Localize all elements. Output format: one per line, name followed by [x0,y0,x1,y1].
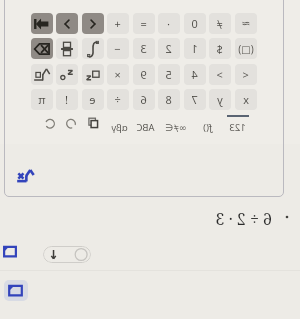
staticText: 2 [165,41,172,56]
button[interactable]: Fraction [56,38,78,59]
button[interactable]: Backspace [31,13,53,34]
button[interactable]: Copy [83,112,103,134]
button[interactable]: $ [209,38,231,59]
button[interactable]: > [209,64,231,85]
button[interactable]: = [133,13,155,34]
button[interactable]: ∞≠∈ [162,112,190,134]
staticText: 123 [229,121,246,134]
button[interactable]: ≠ [209,13,231,34]
staticText: 1 [191,41,198,56]
staticText: 0 [191,16,198,31]
staticText: e [89,92,96,107]
staticText: π [38,92,46,107]
button[interactable]: · [158,13,180,34]
button[interactable]: 8 [158,89,180,110]
button[interactable]: 5 [158,64,180,85]
button[interactable]: (□) [235,38,257,59]
button[interactable]: 9 [133,64,155,85]
staticText: 4 [191,67,198,82]
staticText: · [167,16,170,31]
button[interactable]: Notes [4,280,28,301]
button[interactable]: ! [56,89,78,110]
button[interactable]: × [107,64,129,85]
button[interactable]: 4 [184,64,206,85]
button[interactable]: 3 [133,38,155,59]
staticText: < [242,67,249,82]
button[interactable]: Delete [31,38,53,59]
button[interactable]: Subscript [82,64,104,85]
staticText: > [216,67,223,82]
staticText: 6 ÷ 2 · 3 [215,208,272,230]
staticText: ≠ [216,16,223,31]
staticText: = [140,16,147,31]
staticText: 9 [140,67,147,82]
staticText: x [243,92,249,107]
staticText: 7 [191,92,198,107]
button[interactable]: Left [56,13,78,34]
staticText: $ [216,41,223,56]
button[interactable]: Redo [61,112,81,134]
button[interactable]: + [107,13,129,34]
button[interactable]: e [82,89,104,110]
button[interactable]: 123 [224,112,252,134]
button[interactable]: Note [3,245,17,258]
staticText: + [114,16,121,31]
button[interactable]: Expand [43,246,91,263]
button[interactable]: ≈ [235,13,257,34]
button[interactable]: − [107,38,129,59]
button[interactable]: 6 [133,89,155,110]
button[interactable]: π [31,89,53,110]
button[interactable]: Exponent [31,64,53,85]
button[interactable]: Right [82,13,104,34]
button[interactable]: < [235,64,257,85]
button[interactable]: 7 [184,89,206,110]
button[interactable]: αβγ [106,112,134,134]
button[interactable]: ƒ() [194,112,222,134]
staticText: ƒ() [203,121,213,134]
button[interactable]: Integral [82,38,104,59]
button[interactable]: 1 [184,38,206,59]
staticText: 8 [165,92,172,107]
button[interactable]: x [235,89,257,110]
button[interactable]: 2 [158,38,180,59]
staticText: (□) [238,42,254,56]
button[interactable]: ABC [132,112,160,134]
staticText: 3 [140,41,147,56]
staticText: ∞≠∈ [165,121,187,134]
staticText: × [114,67,121,82]
staticText: y [217,92,223,107]
button[interactable]: Undo [40,112,60,134]
button[interactable]: 0 [184,13,206,34]
button[interactable]: y [209,89,231,110]
staticText: ! [65,92,68,107]
staticText: ÷ [114,92,121,107]
button[interactable]: ÷ [107,89,129,110]
staticText: 5 [165,67,172,82]
button[interactable]: Power [56,64,78,85]
staticText: ≈ [241,17,251,30]
staticText: − [114,41,121,56]
staticText: αβγ [111,121,128,134]
staticText: 6 [140,92,147,107]
staticText: ABC [136,121,155,134]
